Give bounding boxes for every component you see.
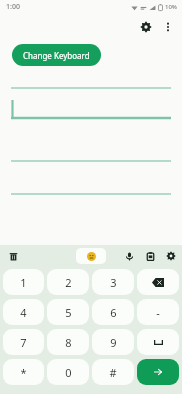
button[interactable]: 5 xyxy=(47,299,89,325)
button[interactable]: 3 xyxy=(92,269,134,295)
button[interactable]: Delete xyxy=(3,246,23,266)
staticText: Change Keyboard xyxy=(23,50,90,61)
button[interactable]: 2 xyxy=(47,269,89,295)
button[interactable]: Voice input xyxy=(122,249,136,263)
button[interactable]: 1 xyxy=(3,269,44,295)
staticText: 3 xyxy=(110,275,117,290)
button[interactable]: Clipboard xyxy=(143,249,157,263)
staticText: 2 xyxy=(65,275,72,290)
staticText: 1 xyxy=(20,275,27,290)
staticText: 4 xyxy=(20,305,27,320)
staticText: * xyxy=(20,365,27,380)
button[interactable]: * xyxy=(3,359,44,385)
button[interactable]: Emoji xyxy=(76,248,106,264)
button[interactable]: Settings xyxy=(134,15,158,39)
button[interactable]: - xyxy=(137,299,179,325)
button[interactable]: Keyboard settings xyxy=(164,249,178,263)
staticText: 6 xyxy=(110,305,117,320)
staticText: 8 xyxy=(65,335,72,350)
button[interactable]: Space xyxy=(137,329,179,355)
staticText: 1:00 xyxy=(6,2,20,12)
button[interactable]: Backspace xyxy=(137,269,179,295)
button[interactable]: 8 xyxy=(47,329,89,355)
staticText: 0 xyxy=(65,365,72,380)
staticText: 9 xyxy=(110,335,117,350)
staticText: 7 xyxy=(20,335,27,350)
button[interactable]: 4 xyxy=(3,299,44,325)
staticText: 5 xyxy=(65,305,72,320)
button[interactable]: Change Keyboard xyxy=(12,44,101,66)
staticText: 10% xyxy=(165,3,177,11)
button[interactable]: 0 xyxy=(47,359,89,385)
button[interactable]: 9 xyxy=(92,329,134,355)
staticText: - xyxy=(156,305,160,320)
button[interactable]: 7 xyxy=(3,329,44,355)
button[interactable]: More options xyxy=(158,17,178,37)
button[interactable]: 6 xyxy=(92,299,134,325)
button[interactable]: # xyxy=(92,359,134,385)
button[interactable]: Enter xyxy=(137,359,179,385)
staticText: # xyxy=(109,365,117,380)
